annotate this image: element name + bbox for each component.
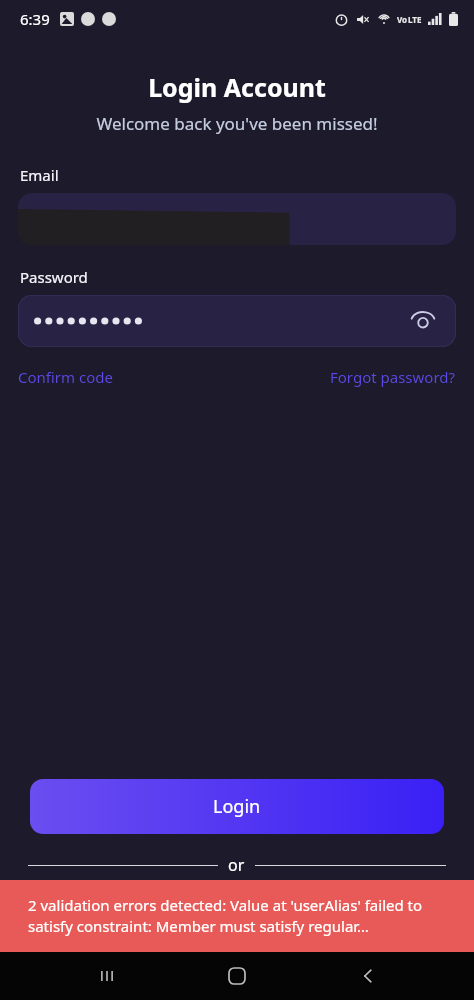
staticText: Password — [20, 267, 88, 287]
button[interactable]: Confirm code — [18, 367, 113, 387]
button[interactable]: Show password — [406, 304, 440, 338]
staticText: or — [228, 854, 245, 876]
staticText: Vo — [397, 14, 408, 25]
staticText: Confirm code — [18, 367, 113, 387]
button[interactable]: Home — [213, 952, 261, 1000]
button[interactable]: Sign in with Discord — [315, 891, 360, 936]
button[interactable]: Forgot password? — [330, 367, 456, 387]
staticText: Email — [20, 165, 59, 185]
staticText: Forgot password? — [330, 367, 456, 387]
button[interactable]: Show password — [18, 295, 456, 347]
button[interactable]: Sign in with Facebook — [181, 891, 226, 936]
staticText: 2 validation errors detected: Value at '… — [28, 895, 446, 937]
button[interactable]: Back — [344, 952, 392, 1000]
staticText: Login — [213, 794, 261, 819]
button[interactable]: Sign in with Apple — [248, 891, 293, 936]
button[interactable]: Login — [30, 779, 444, 834]
staticText: Welcome back you've been missed! — [0, 112, 474, 135]
button[interactable] — [18, 193, 456, 245]
staticText: 6:39 — [20, 9, 50, 29]
button[interactable]: Recent apps — [83, 952, 131, 1000]
button[interactable]: Sign in with Google — [114, 891, 159, 936]
staticText: Login Account — [0, 70, 474, 104]
staticText: LTE — [408, 14, 422, 25]
